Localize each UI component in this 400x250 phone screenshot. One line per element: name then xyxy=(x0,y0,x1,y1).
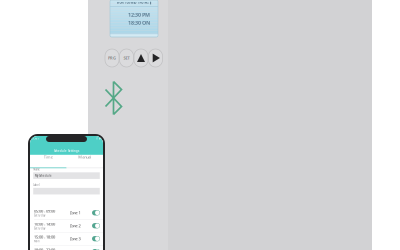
staticText: Name xyxy=(33,168,40,171)
staticText: Manual xyxy=(78,154,91,159)
staticText: Zone 3 xyxy=(69,236,80,241)
staticText: 19:00 - 22:00 xyxy=(34,247,55,250)
staticText: 12:30 PM xyxy=(128,11,150,18)
staticText: 10:00 - 14:00 xyxy=(34,221,55,227)
staticText: Mon xyxy=(34,240,40,243)
button[interactable]: SET xyxy=(119,49,133,67)
staticText: 18:30 ON xyxy=(128,19,150,26)
staticText: SET xyxy=(123,55,129,61)
button[interactable]: Time xyxy=(30,155,66,165)
staticText: 9:41 xyxy=(32,137,39,140)
staticText: Zone 1 xyxy=(69,210,80,215)
staticText: PRG xyxy=(108,55,116,61)
staticText: Label xyxy=(33,183,40,187)
button[interactable]: Next xyxy=(148,49,162,67)
staticText: Every day xyxy=(34,227,45,230)
staticText: 05:00 - 09:00 xyxy=(34,208,55,214)
staticText: Zone 2 xyxy=(69,223,80,228)
button[interactable]: Up xyxy=(134,49,148,67)
button[interactable]: PRG xyxy=(105,49,119,67)
staticText: Time xyxy=(44,154,53,159)
button[interactable]: 10:00 - 14:00 xyxy=(30,219,103,232)
staticText: Every day xyxy=(34,214,45,217)
staticText: My Schedule xyxy=(35,174,52,177)
button[interactable]: 15:00 - 18:00 xyxy=(30,232,103,245)
staticText: 15:00 - 18:00 xyxy=(34,234,55,240)
staticText: ıl ▰ xyxy=(96,137,101,140)
staticText: Schedule Settings xyxy=(54,149,79,153)
button[interactable]: 19:00 - 22:00 xyxy=(30,245,103,250)
button[interactable]: 05:00 - 09:00 xyxy=(30,206,103,219)
button[interactable]: Manual xyxy=(66,155,103,165)
staticText: MON TUE WED THU FRI ❚ xyxy=(116,1,151,4)
